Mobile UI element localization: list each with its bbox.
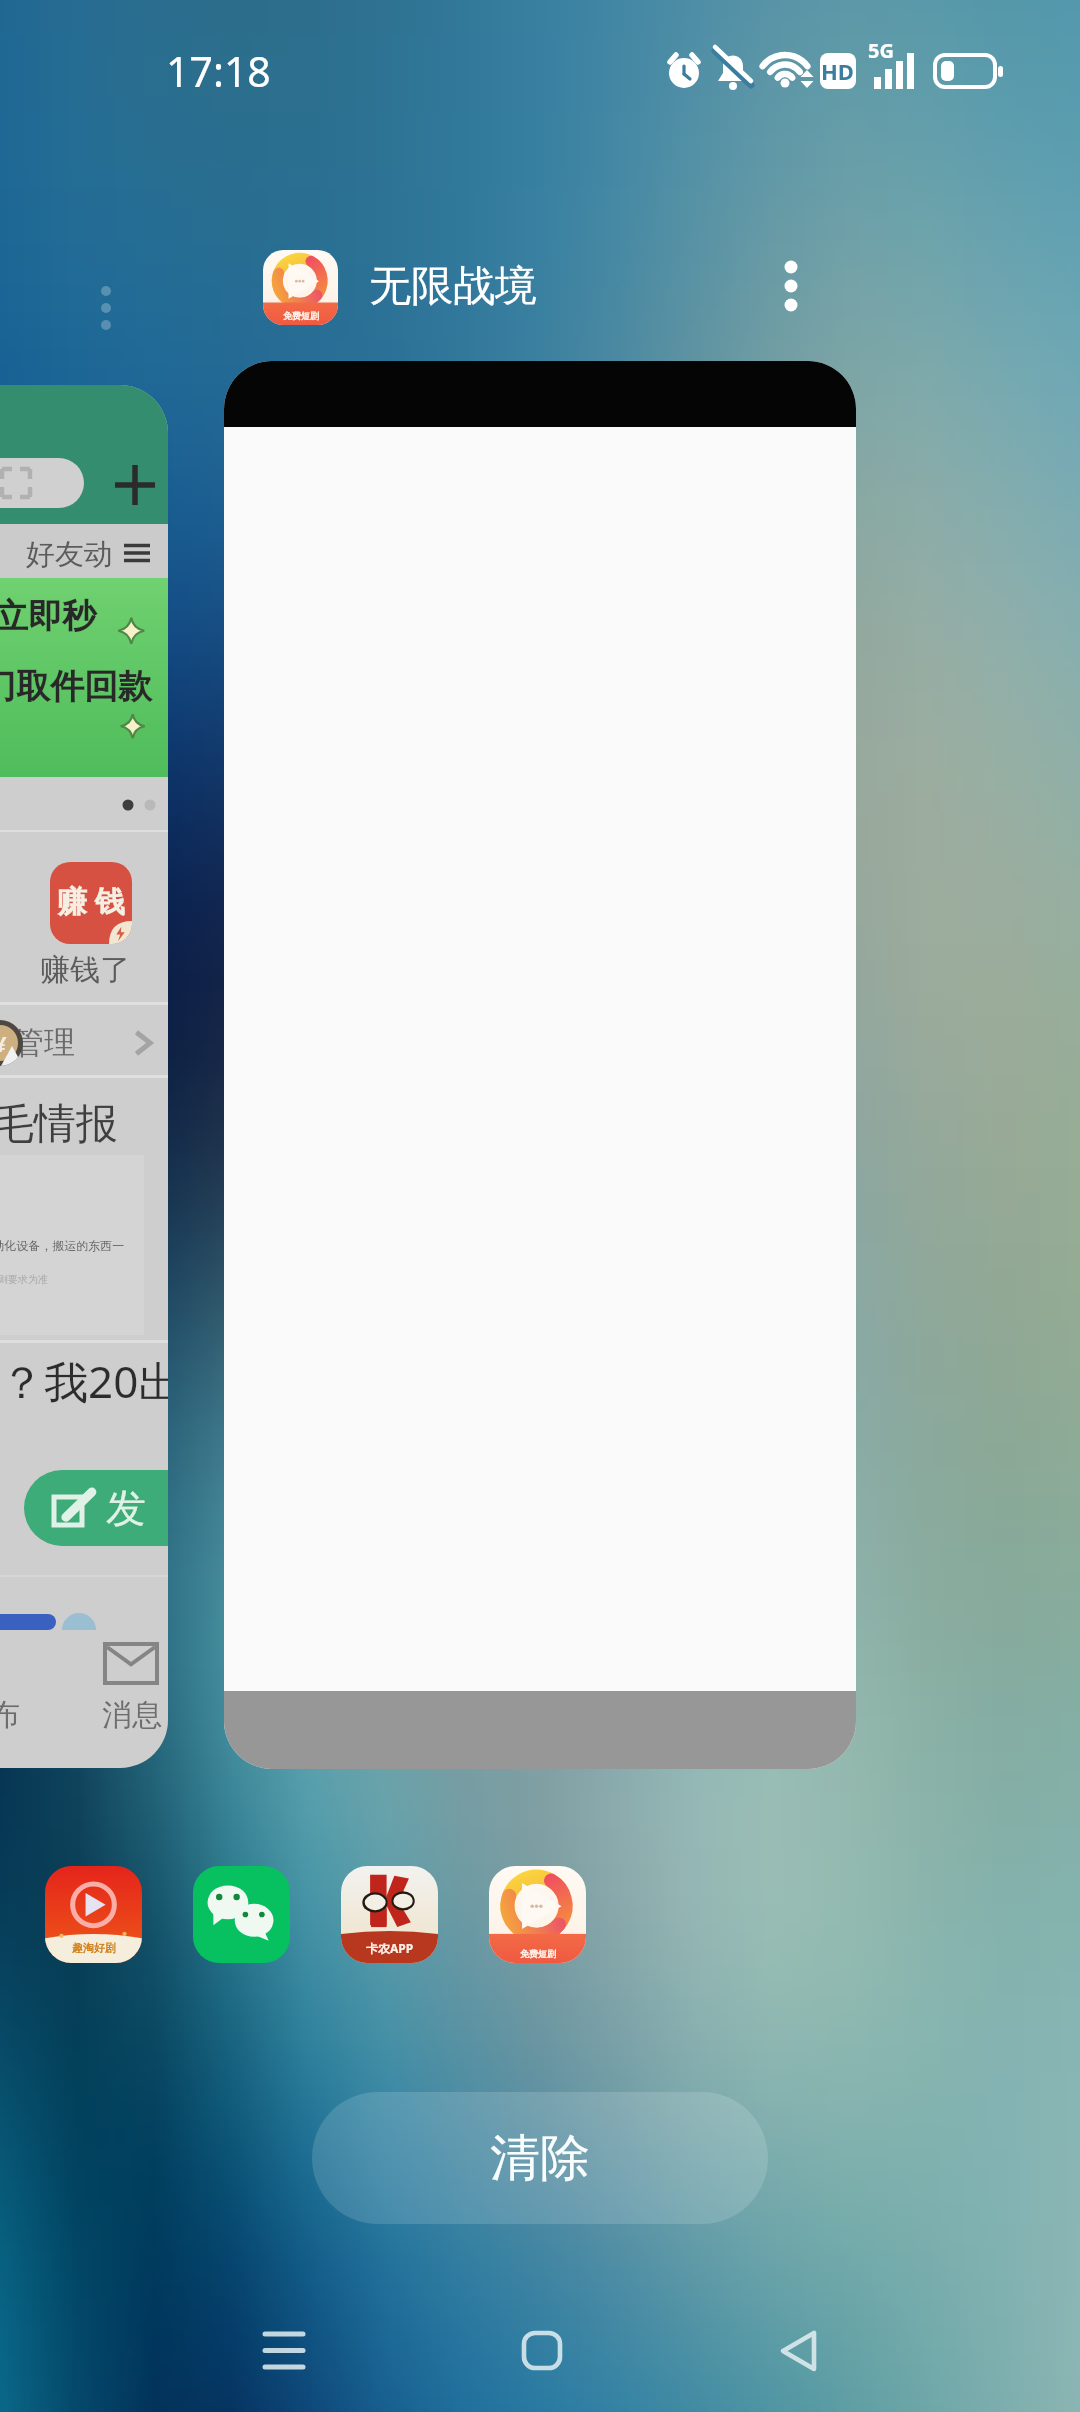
staticText: 工友分享: 搬运物流自动化设备，搬运的东西一: [0, 1237, 125, 1253]
staticText: 5G: [868, 37, 894, 64]
button[interactable]: 微信: [193, 1866, 290, 1963]
button[interactable]: 好友动: [0, 385, 168, 1768]
staticText: 17:18: [166, 43, 271, 99]
staticText: 赚钱了: [40, 951, 130, 989]
button[interactable]: 卡农APP: [341, 1866, 438, 1963]
staticText: 免费短剧: [520, 1948, 556, 1959]
staticText: 发: [106, 1483, 146, 1533]
staticText: 趣淘好剧: [72, 1941, 116, 1955]
button[interactable]: 清除: [312, 2092, 768, 2224]
button[interactable]: More options: [751, 245, 831, 325]
staticText: 持管理: [0, 1023, 75, 1062]
button[interactable]: Back: [740, 2290, 860, 2410]
staticText: 门取件回款: [0, 665, 152, 708]
staticText: 毛情报: [0, 1098, 118, 1151]
staticText: 清除: [490, 2127, 590, 2190]
staticText: 布: [0, 1696, 20, 1734]
staticText: 自享料参考，实际情况以法则要求为准: [0, 1273, 48, 1286]
staticText: 的？我20出: [0, 1351, 168, 1411]
staticText: 免费短剧: [283, 310, 319, 321]
staticText: HD: [821, 56, 854, 86]
staticText: 卡农APP: [366, 1940, 414, 1956]
staticText: ¥: [0, 1028, 7, 1058]
staticText: 好友动: [26, 536, 113, 573]
button[interactable]: Home: [482, 2290, 602, 2410]
button[interactable]: 免费短剧: [489, 1866, 586, 1963]
button[interactable]: 趣淘好剧: [45, 1866, 142, 1963]
staticText: 赚 钱: [57, 880, 125, 921]
staticText: 立即秒: [0, 595, 96, 638]
button[interactable]: [224, 361, 856, 1769]
staticText: 消息: [102, 1696, 162, 1734]
button[interactable]: Recents: [224, 2290, 344, 2410]
staticText: 无限战境: [369, 260, 537, 313]
